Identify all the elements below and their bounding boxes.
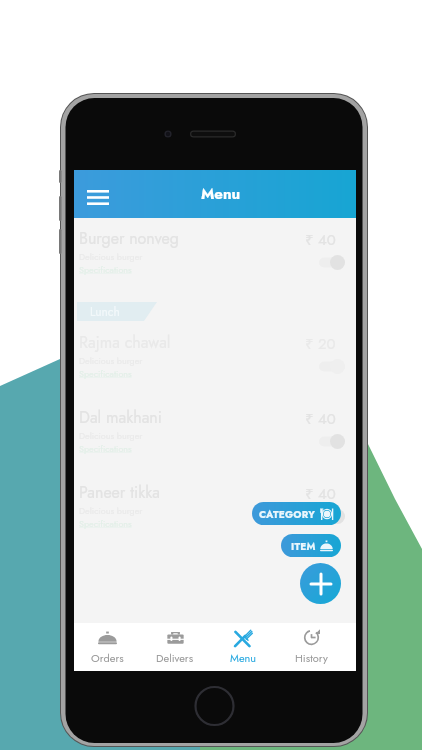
button[interactable]: Menu [209, 623, 277, 671]
button[interactable]: Dal makhani [74, 397, 356, 472]
staticText: History [295, 650, 328, 666]
staticText: Orders [91, 650, 124, 666]
staticText: ITEM [291, 539, 316, 553]
staticText: ₹ 40 [305, 229, 336, 251]
staticText: Specifications [79, 517, 132, 530]
staticText: CATEGORY [259, 507, 316, 521]
button[interactable]: Burger nonveg [74, 218, 356, 293]
staticText: Paneer tikka [79, 481, 160, 504]
button[interactable]: History [277, 623, 345, 671]
staticText: Menu [201, 183, 241, 205]
button[interactable]: Toggle availability [319, 509, 345, 524]
button[interactable]: Open navigation menu [81, 177, 115, 211]
button[interactable]: Paneer tikka [74, 472, 356, 547]
button[interactable]: Orders [74, 623, 141, 671]
button[interactable]: Add [300, 563, 341, 604]
staticText: Menu [230, 650, 257, 666]
staticText: Delicious burger [79, 429, 143, 442]
staticText: Delicious burger [79, 354, 143, 367]
staticText: Delicious burger [79, 504, 143, 517]
staticText: ₹ 40 [305, 408, 336, 430]
staticText: ₹ 40 [305, 483, 336, 505]
button[interactable]: Toggle availability [319, 434, 345, 449]
staticText: Burger nonveg [79, 227, 179, 250]
button[interactable]: ITEM [281, 534, 341, 557]
staticText: Specifications [79, 263, 132, 276]
button[interactable]: Delivers [141, 623, 209, 671]
staticText: Specifications [79, 367, 132, 380]
staticText: ₹ 20 [305, 333, 336, 355]
staticText: Delivers [156, 650, 194, 666]
staticText: Dal makhani [79, 406, 162, 429]
staticText: Delicious burger [79, 250, 143, 263]
button[interactable]: CATEGORY [252, 502, 341, 525]
button[interactable]: Toggle availability [319, 255, 345, 270]
staticText: Rajma chawal [79, 331, 171, 354]
staticText: Specifications [79, 442, 132, 455]
staticText: Lunch [90, 303, 120, 320]
